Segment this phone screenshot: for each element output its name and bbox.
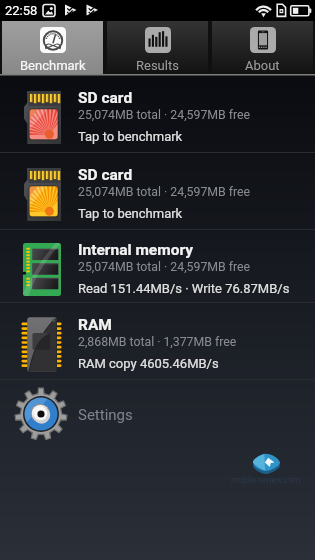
staticText: Results (136, 58, 179, 73)
button[interactable]: Benchmark (2, 21, 103, 74)
button[interactable]: SD card (0, 153, 315, 229)
button[interactable]: Settings (0, 380, 315, 448)
button[interactable]: SD card (0, 76, 315, 152)
staticText: Settings (78, 406, 133, 424)
staticText: Internal memory (78, 241, 194, 259)
staticText: RAM copy 4605.46MB/s (78, 356, 219, 371)
button[interactable]: RAM (0, 303, 315, 379)
staticText: Tap to benchmark (78, 206, 183, 221)
staticText: About (245, 58, 280, 73)
button[interactable]: Internal memory (0, 230, 315, 302)
staticText: mobile-review.com (231, 475, 301, 485)
staticText: SD card (78, 166, 133, 184)
staticText: 25,074MB total · 24,597MB free (78, 260, 251, 274)
staticText: Benchmark (20, 58, 86, 73)
staticText: 25,074MB total · 24,597MB free (78, 108, 251, 122)
staticText: Tap to benchmark (78, 129, 183, 144)
staticText: 2,868MB total · 1,377MB free (78, 335, 237, 349)
staticText: SD card (78, 89, 133, 107)
staticText: RAM (78, 316, 112, 334)
staticText: Read 151.44MB/s · Write 76.87MB/s (78, 281, 290, 296)
button[interactable]: About (212, 21, 313, 74)
button[interactable]: Results (107, 21, 208, 74)
staticText: 25,074MB total · 24,597MB free (78, 185, 251, 199)
staticText: 22:58 (5, 3, 38, 18)
